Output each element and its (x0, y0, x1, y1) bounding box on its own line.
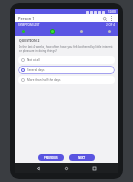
staticText: 2 OF 4 (106, 23, 115, 27)
button[interactable]: Step (79, 29, 84, 34)
button[interactable]: Step (49, 28, 56, 35)
staticText: 12:00 (108, 10, 116, 14)
staticText: QUESTION 2 (19, 38, 40, 43)
staticText: PREVIOUS (44, 156, 58, 160)
staticText: Not at all (27, 58, 40, 62)
button[interactable]: Step (107, 29, 112, 34)
button[interactable]: Recent apps (90, 164, 99, 173)
button[interactable]: Home (62, 164, 71, 173)
button[interactable]: Not at all (18, 56, 115, 64)
button[interactable]: NEXT (69, 154, 95, 161)
staticText: Several days (27, 68, 45, 72)
button[interactable]: Several days (18, 66, 115, 74)
staticText: Person 1 (18, 16, 35, 21)
button[interactable]: PREVIOUS (38, 154, 64, 161)
button[interactable]: More options (108, 15, 115, 22)
staticText: NEXT (78, 156, 86, 160)
button[interactable]: More than half the days (18, 76, 115, 84)
button[interactable]: Step (21, 29, 26, 34)
button[interactable]: Search (101, 15, 108, 22)
staticText: In the last 4 weeks, how often have you … (19, 45, 114, 53)
button[interactable]: Back (34, 164, 43, 173)
staticText: SYMPTOM LIST (18, 23, 40, 27)
staticText: More than half the days (27, 78, 61, 82)
